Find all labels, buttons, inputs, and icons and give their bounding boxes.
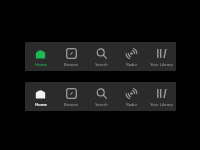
other: Browse	[65, 47, 78, 60]
button[interactable]: Browse	[56, 45, 86, 69]
button[interactable]: Search	[86, 85, 116, 109]
other: Your Library	[155, 47, 168, 60]
staticText: Search	[95, 102, 108, 107]
staticText: Your Library	[150, 62, 173, 67]
staticText: Your Library	[150, 102, 173, 107]
other: Search	[95, 87, 108, 100]
button[interactable]: Search	[86, 45, 116, 69]
other: Radio	[125, 47, 138, 60]
button[interactable]: Home	[25, 85, 56, 109]
button[interactable]: Your Library	[146, 45, 176, 69]
staticText: Browse	[64, 62, 78, 67]
other: Home	[34, 87, 47, 100]
other: Your Library	[155, 87, 168, 100]
other: Home	[34, 47, 47, 60]
staticText: Home	[35, 102, 47, 107]
other: Search	[95, 47, 108, 60]
other: Radio	[125, 87, 138, 100]
staticText: Browse	[64, 102, 78, 107]
button[interactable]: Home	[25, 45, 56, 69]
button[interactable]: Browse	[56, 85, 86, 109]
button[interactable]: Radio	[116, 85, 146, 109]
other: Browse	[65, 87, 78, 100]
staticText: Radio	[126, 102, 137, 107]
button[interactable]: Your Library	[146, 85, 176, 109]
button[interactable]: Radio	[116, 45, 146, 69]
staticText: Radio	[126, 62, 137, 67]
staticText: Home	[35, 62, 47, 67]
staticText: Search	[95, 62, 108, 67]
